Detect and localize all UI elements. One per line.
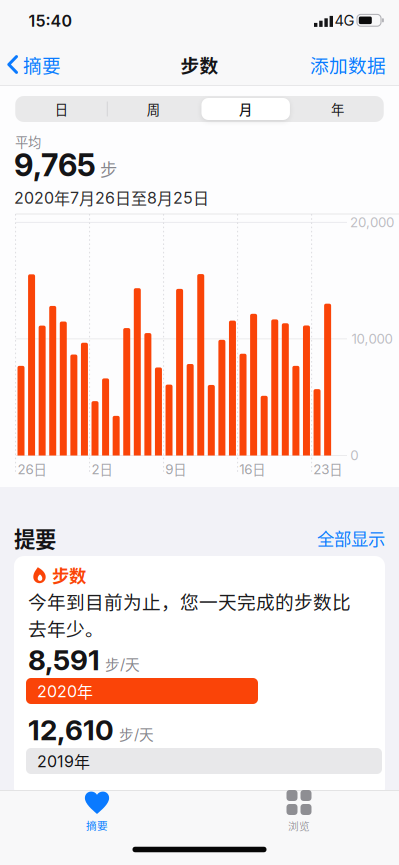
staticText: 15:40 xyxy=(28,12,72,30)
staticText: 2019年 xyxy=(37,750,90,772)
staticText: 16日 xyxy=(239,460,265,478)
staticText: 20,000 xyxy=(350,214,394,230)
button[interactable]: 年 xyxy=(291,96,384,122)
button[interactable]: 周 xyxy=(107,96,199,122)
staticText: 4G xyxy=(334,12,354,29)
staticText: 2020年 xyxy=(37,680,93,702)
staticText: 10,000 xyxy=(351,331,392,347)
staticText: 日 xyxy=(55,100,68,118)
staticText: 9,765 xyxy=(14,147,96,183)
staticText: 0 xyxy=(350,448,358,463)
staticText: 8,591 xyxy=(28,643,100,676)
button[interactable]: 月 xyxy=(199,96,291,122)
staticText: 平均 xyxy=(15,132,41,151)
staticText: 去年少。 xyxy=(28,615,104,641)
staticText: 周 xyxy=(147,100,160,118)
button[interactable]: 摘要 xyxy=(7,51,61,78)
button[interactable] xyxy=(14,556,385,798)
button[interactable]: 摘要 xyxy=(52,787,142,835)
staticText: 月 xyxy=(239,100,252,118)
staticText: 提要 xyxy=(14,523,56,553)
staticText: 2020年7月26日至8月25日 xyxy=(14,186,209,209)
staticText: 浏览 xyxy=(288,818,310,833)
staticText: 23日 xyxy=(313,460,342,478)
staticText: 12,610 xyxy=(28,713,114,746)
staticText: 步数 xyxy=(180,51,218,78)
staticText: 9日 xyxy=(165,460,186,478)
staticText: 步/天 xyxy=(105,653,140,674)
staticText: 26日 xyxy=(17,460,46,478)
staticText: 添加数据 xyxy=(310,51,386,78)
button[interactable]: 添加数据 xyxy=(310,51,386,78)
staticText: 步数 xyxy=(52,563,86,587)
staticText: 步 xyxy=(100,156,117,181)
staticText: 全部显示 xyxy=(317,526,385,550)
button[interactable]: 浏览 xyxy=(254,787,344,835)
staticText: 摘要 xyxy=(86,817,108,833)
staticText: 年 xyxy=(331,100,344,118)
staticText: 摘要 xyxy=(23,51,61,78)
staticText: 步/天 xyxy=(119,723,154,744)
button[interactable]: 日 xyxy=(15,96,107,122)
staticText: 今年到目前为止，您一天完成的步数比 xyxy=(28,588,351,614)
staticText: 2日 xyxy=(91,460,112,478)
button[interactable]: 全部显示 xyxy=(317,526,385,550)
